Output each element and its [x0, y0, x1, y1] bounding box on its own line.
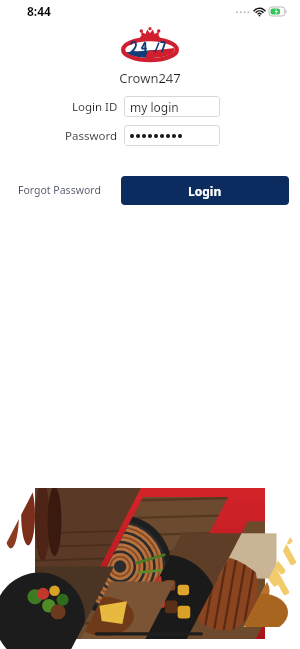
button[interactable]: Forgot Password: [16, 179, 103, 201]
staticText: my login: [130, 99, 179, 115]
button[interactable]: [35, 488, 265, 639]
staticText: 8:44: [27, 3, 51, 19]
staticText: Forgot Password: [18, 183, 101, 197]
staticText: Login: [188, 183, 222, 199]
button[interactable]: [124, 125, 220, 146]
staticText: Crown247: [0, 69, 300, 87]
staticText: Password: [65, 128, 118, 144]
button[interactable]: my login: [124, 96, 220, 117]
staticText: Login ID: [72, 99, 118, 115]
button[interactable]: Login: [121, 176, 289, 205]
